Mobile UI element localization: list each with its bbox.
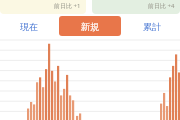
button[interactable]: 累計: [125, 16, 178, 36]
staticText: 前日比 +4: [148, 2, 175, 10]
button[interactable]: 新規: [59, 16, 121, 36]
staticText: 前日比 +1: [54, 2, 81, 10]
staticText: 現在: [20, 21, 38, 32]
button[interactable]: 前日比 +1: [0, 0, 86, 14]
staticText: 新規: [81, 21, 99, 32]
staticText: 累計: [143, 21, 161, 32]
button[interactable]: 現在: [2, 16, 55, 36]
button[interactable]: 前日比 +4: [92, 0, 180, 14]
